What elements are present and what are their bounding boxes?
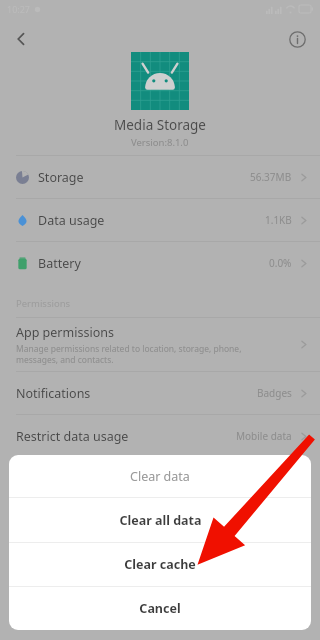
staticText: Clear all data bbox=[119, 512, 202, 529]
button[interactable]: Back bbox=[6, 24, 36, 54]
button[interactable]: Clear all data bbox=[9, 498, 311, 542]
staticText: Version:8.1.0 bbox=[131, 136, 189, 149]
staticText: App permissions bbox=[16, 324, 114, 341]
button[interactable]: Battery bbox=[0, 242, 320, 284]
staticText: Mobile data bbox=[236, 429, 292, 443]
button[interactable]: Storage bbox=[0, 156, 320, 198]
staticText: Media Storage bbox=[114, 116, 206, 134]
staticText: Storage bbox=[38, 169, 84, 186]
button[interactable]: Cancel bbox=[9, 587, 311, 630]
button[interactable]: Restrict data usage bbox=[0, 415, 320, 457]
staticText: 1.1KB bbox=[265, 213, 292, 227]
staticText: Clear data bbox=[130, 468, 190, 485]
button[interactable]: Notifications bbox=[0, 372, 320, 414]
staticText: Cancel bbox=[139, 600, 181, 617]
staticText: 0.0% bbox=[269, 256, 292, 270]
staticText: Notifications bbox=[16, 385, 91, 402]
staticText: 56.37MB bbox=[250, 170, 292, 184]
staticText: Restrict data usage bbox=[16, 428, 129, 445]
button[interactable]: App info bbox=[282, 24, 312, 54]
button[interactable]: Clear cache bbox=[9, 543, 311, 586]
button[interactable]: Data usage bbox=[0, 199, 320, 241]
staticText: Data usage bbox=[38, 212, 105, 229]
staticText: Manage permissions related to location, … bbox=[16, 343, 242, 365]
button[interactable]: App permissions bbox=[0, 318, 320, 371]
staticText: Badges bbox=[257, 386, 292, 400]
staticText: Clear cache bbox=[124, 556, 196, 573]
staticText: Battery bbox=[38, 255, 81, 272]
staticText: Permissions bbox=[16, 297, 71, 310]
